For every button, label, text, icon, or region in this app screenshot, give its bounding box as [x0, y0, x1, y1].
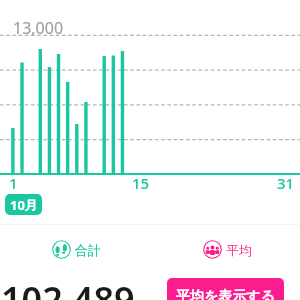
staticText: 平均を表示する [176, 288, 275, 300]
staticText: 31 [277, 173, 295, 193]
staticText: 13,000 [13, 17, 64, 39]
staticText: 102,489 [1, 275, 135, 300]
staticText: 1 [9, 173, 18, 193]
staticText: 15 [132, 173, 150, 193]
button[interactable]: 平均を表示する [167, 278, 284, 300]
staticText: 10月 [10, 196, 38, 214]
button[interactable]: 合計 [52, 240, 101, 259]
staticText: 合計 [75, 242, 101, 258]
button[interactable]: 平均 [203, 240, 252, 259]
staticText: 平均 [226, 242, 252, 258]
button[interactable]: 10月 [5, 194, 42, 215]
